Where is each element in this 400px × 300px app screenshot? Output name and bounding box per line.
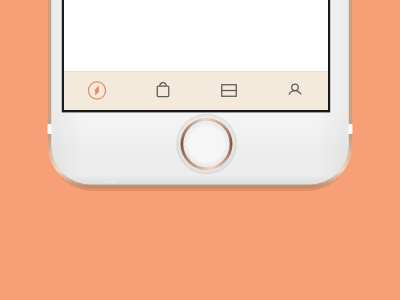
button[interactable]: Home: [180, 118, 233, 171]
button[interactable]: Shop: [130, 71, 196, 110]
button[interactable]: Discover: [64, 71, 130, 110]
button[interactable]: Profile: [262, 71, 328, 110]
button[interactable]: Collections: [196, 71, 262, 110]
